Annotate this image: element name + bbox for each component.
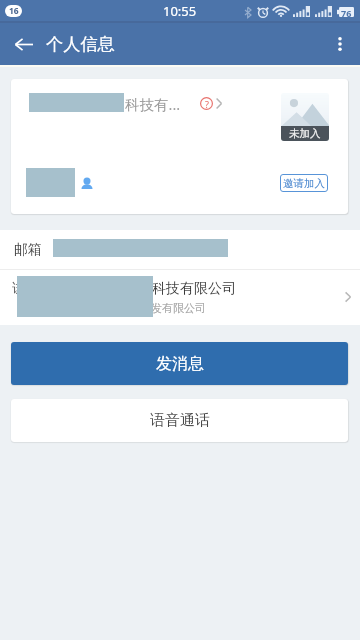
- staticText: 语音通话: [150, 411, 210, 430]
- staticText: 10:55: [163, 2, 197, 20]
- staticText: 邮箱: [14, 241, 42, 259]
- button[interactable]: 科技有...: [11, 79, 348, 214]
- button[interactable]: 发消息: [11, 342, 348, 385]
- button[interactable]: More options: [320, 23, 360, 65]
- button[interactable]: 邀请加入: [280, 174, 328, 192]
- button[interactable]: 科技有限公司: [0, 270, 360, 325]
- staticText: 未加入: [289, 127, 321, 140]
- button[interactable]: 语音通话: [11, 399, 348, 442]
- staticText: 科技有...: [125, 94, 181, 114]
- staticText: 邀请加入: [283, 177, 325, 190]
- staticText: 发有限公司: [151, 301, 206, 315]
- staticText: 16: [9, 5, 19, 17]
- staticText: 科技有限公司: [152, 280, 236, 298]
- button[interactable]: 邮箱: [0, 230, 360, 269]
- staticText: 76: [341, 7, 352, 17]
- staticText: 发消息: [156, 354, 204, 374]
- staticText: 试: [12, 280, 26, 298]
- staticText: 个人信息: [46, 33, 115, 55]
- button[interactable]: Back: [7, 23, 41, 65]
- staticText: ?: [205, 98, 209, 110]
